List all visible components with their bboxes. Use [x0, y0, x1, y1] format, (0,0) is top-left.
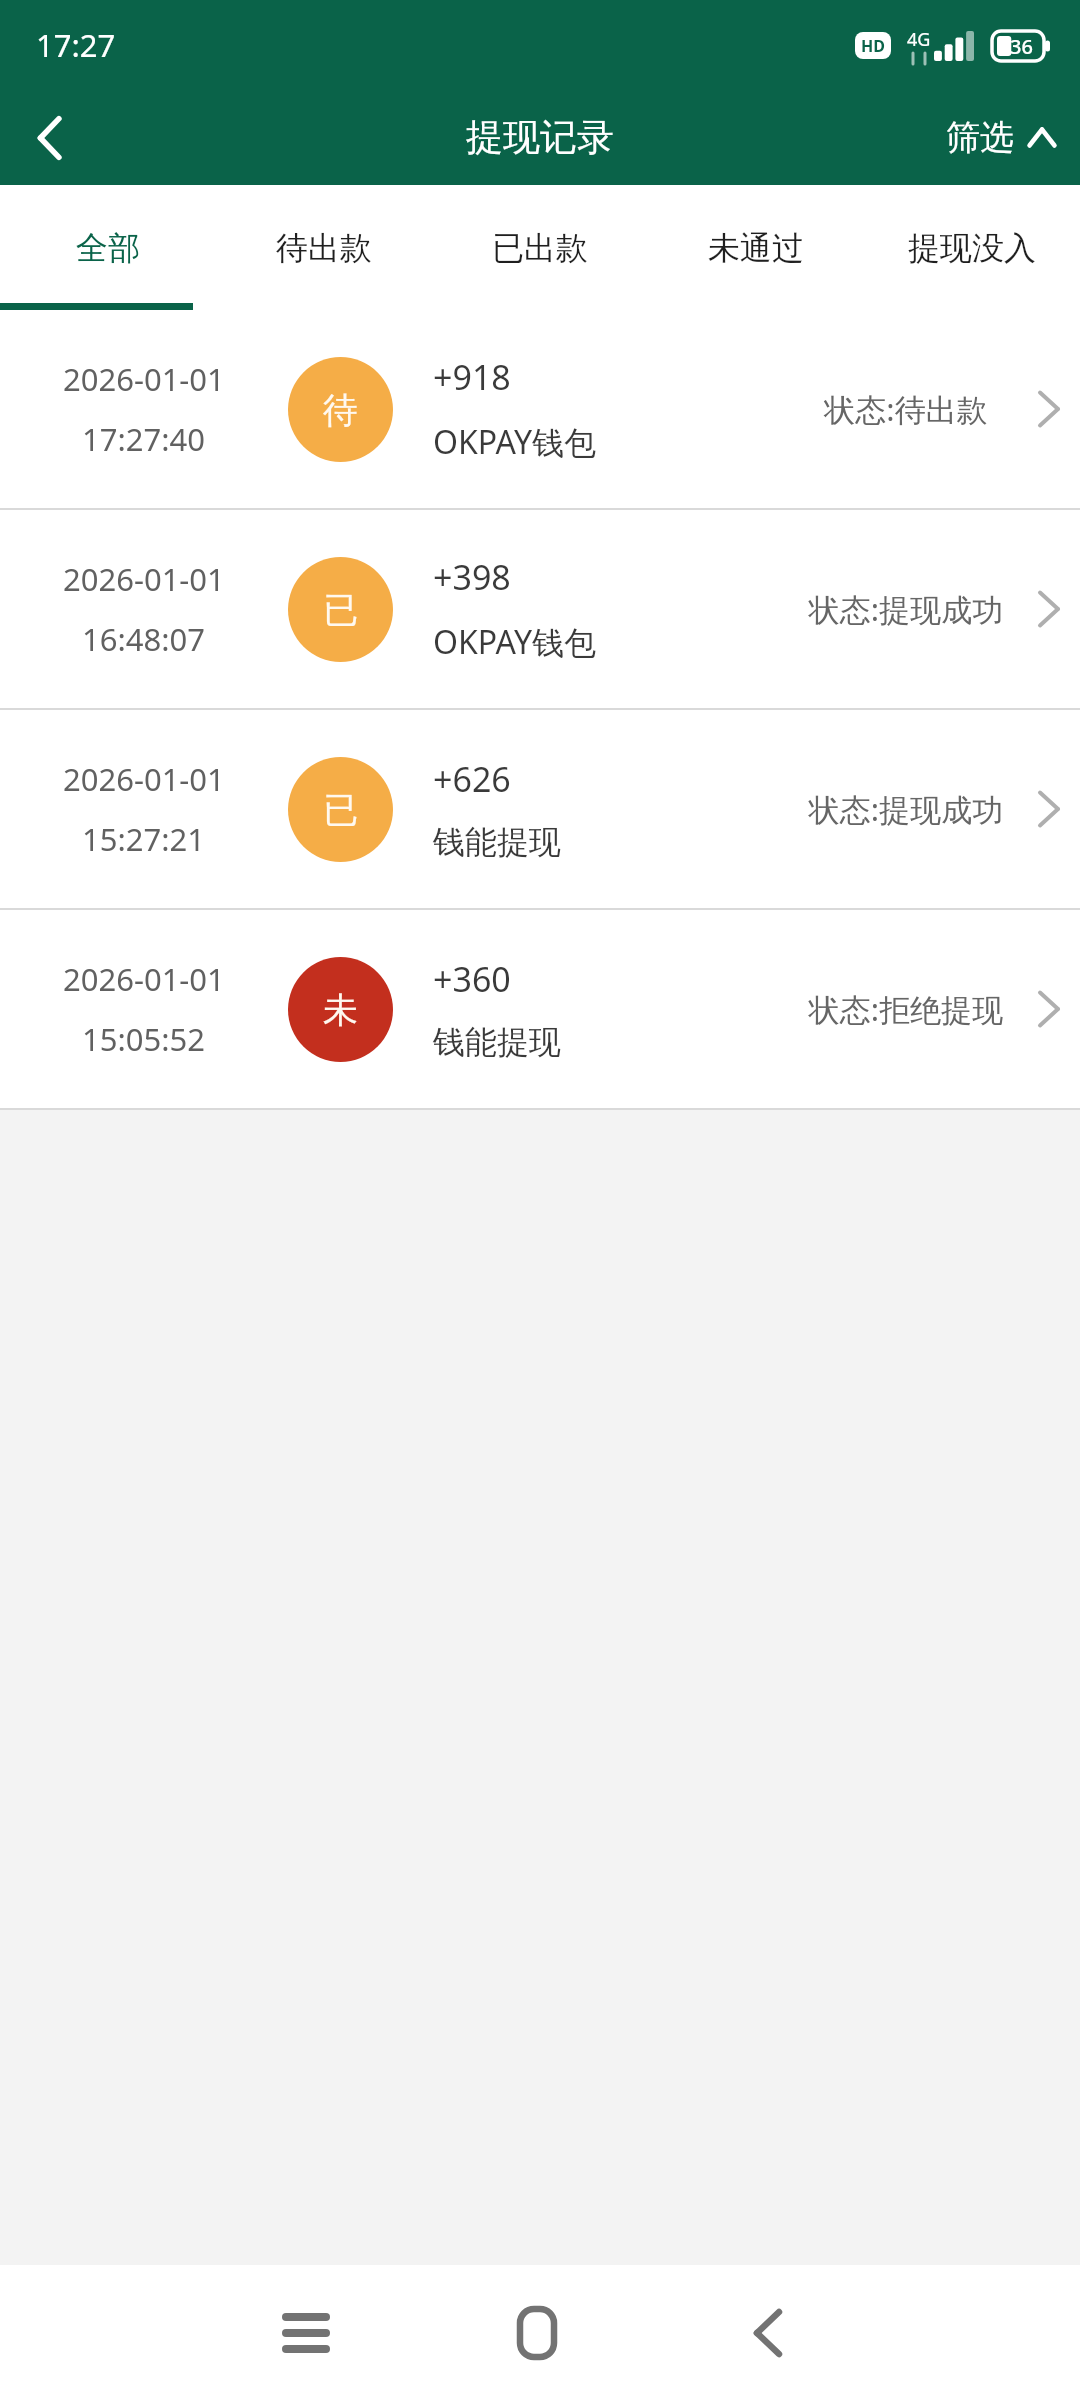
staticText: 未通过: [708, 228, 804, 268]
staticText: 待: [323, 388, 358, 432]
staticText: 钱能提现: [433, 1022, 561, 1062]
staticText: 4G: [907, 27, 931, 52]
staticText: 提现没入: [908, 228, 1036, 268]
button[interactable]: Home: [489, 2285, 584, 2380]
button[interactable]: 2026-01-01: [0, 910, 1080, 1108]
staticText: 2026-01-01: [63, 758, 225, 800]
staticText: 36: [1010, 33, 1033, 60]
button[interactable]: 已出款: [432, 185, 648, 310]
staticText: 状态:拒绝提现: [794, 988, 1018, 1030]
button[interactable]: 2026-01-01: [0, 510, 1080, 708]
staticText: +918: [433, 354, 511, 400]
staticText: OKPAY钱包: [433, 620, 597, 664]
staticText: 筛选: [946, 116, 1014, 159]
staticText: 状态:提现成功: [794, 588, 1018, 630]
button[interactable]: 提现没入: [864, 185, 1080, 310]
staticText: 已出款: [492, 228, 588, 268]
staticText: 2026-01-01: [63, 558, 225, 600]
staticText: +626: [433, 756, 511, 802]
staticText: 已: [323, 588, 358, 632]
staticText: HD: [861, 35, 885, 57]
staticText: 提现记录: [466, 114, 614, 161]
button[interactable]: 未通过: [648, 185, 864, 310]
staticText: 全部: [76, 228, 140, 268]
button[interactable]: 待出款: [216, 185, 432, 310]
staticText: +360: [433, 956, 511, 1002]
staticText: OKPAY钱包: [433, 420, 597, 464]
staticText: +398: [433, 554, 511, 600]
staticText: 2026-01-01: [63, 958, 225, 1000]
staticText: 未: [323, 988, 358, 1032]
button[interactable]: 2026-01-01: [0, 310, 1080, 508]
staticText: 钱能提现: [433, 822, 561, 862]
staticText: 状态:提现成功: [794, 788, 1018, 830]
staticText: 2026-01-01: [63, 358, 225, 400]
staticText: 17:27: [36, 24, 116, 66]
staticText: 16:48:07: [82, 618, 206, 660]
button[interactable]: Recent apps: [258, 2285, 353, 2380]
staticText: 15:05:52: [82, 1018, 206, 1060]
button[interactable]: Back: [720, 2285, 815, 2380]
staticText: 状态:待出款: [794, 388, 1018, 430]
staticText: 15:27:21: [82, 818, 206, 860]
button[interactable]: 2026-01-01: [0, 710, 1080, 908]
button[interactable]: Back: [0, 90, 100, 185]
staticText: 待出款: [276, 228, 372, 268]
button[interactable]: 筛选: [936, 116, 1080, 159]
button[interactable]: 全部: [0, 185, 216, 310]
staticText: 已: [323, 788, 358, 832]
staticText: 17:27:40: [82, 418, 206, 460]
